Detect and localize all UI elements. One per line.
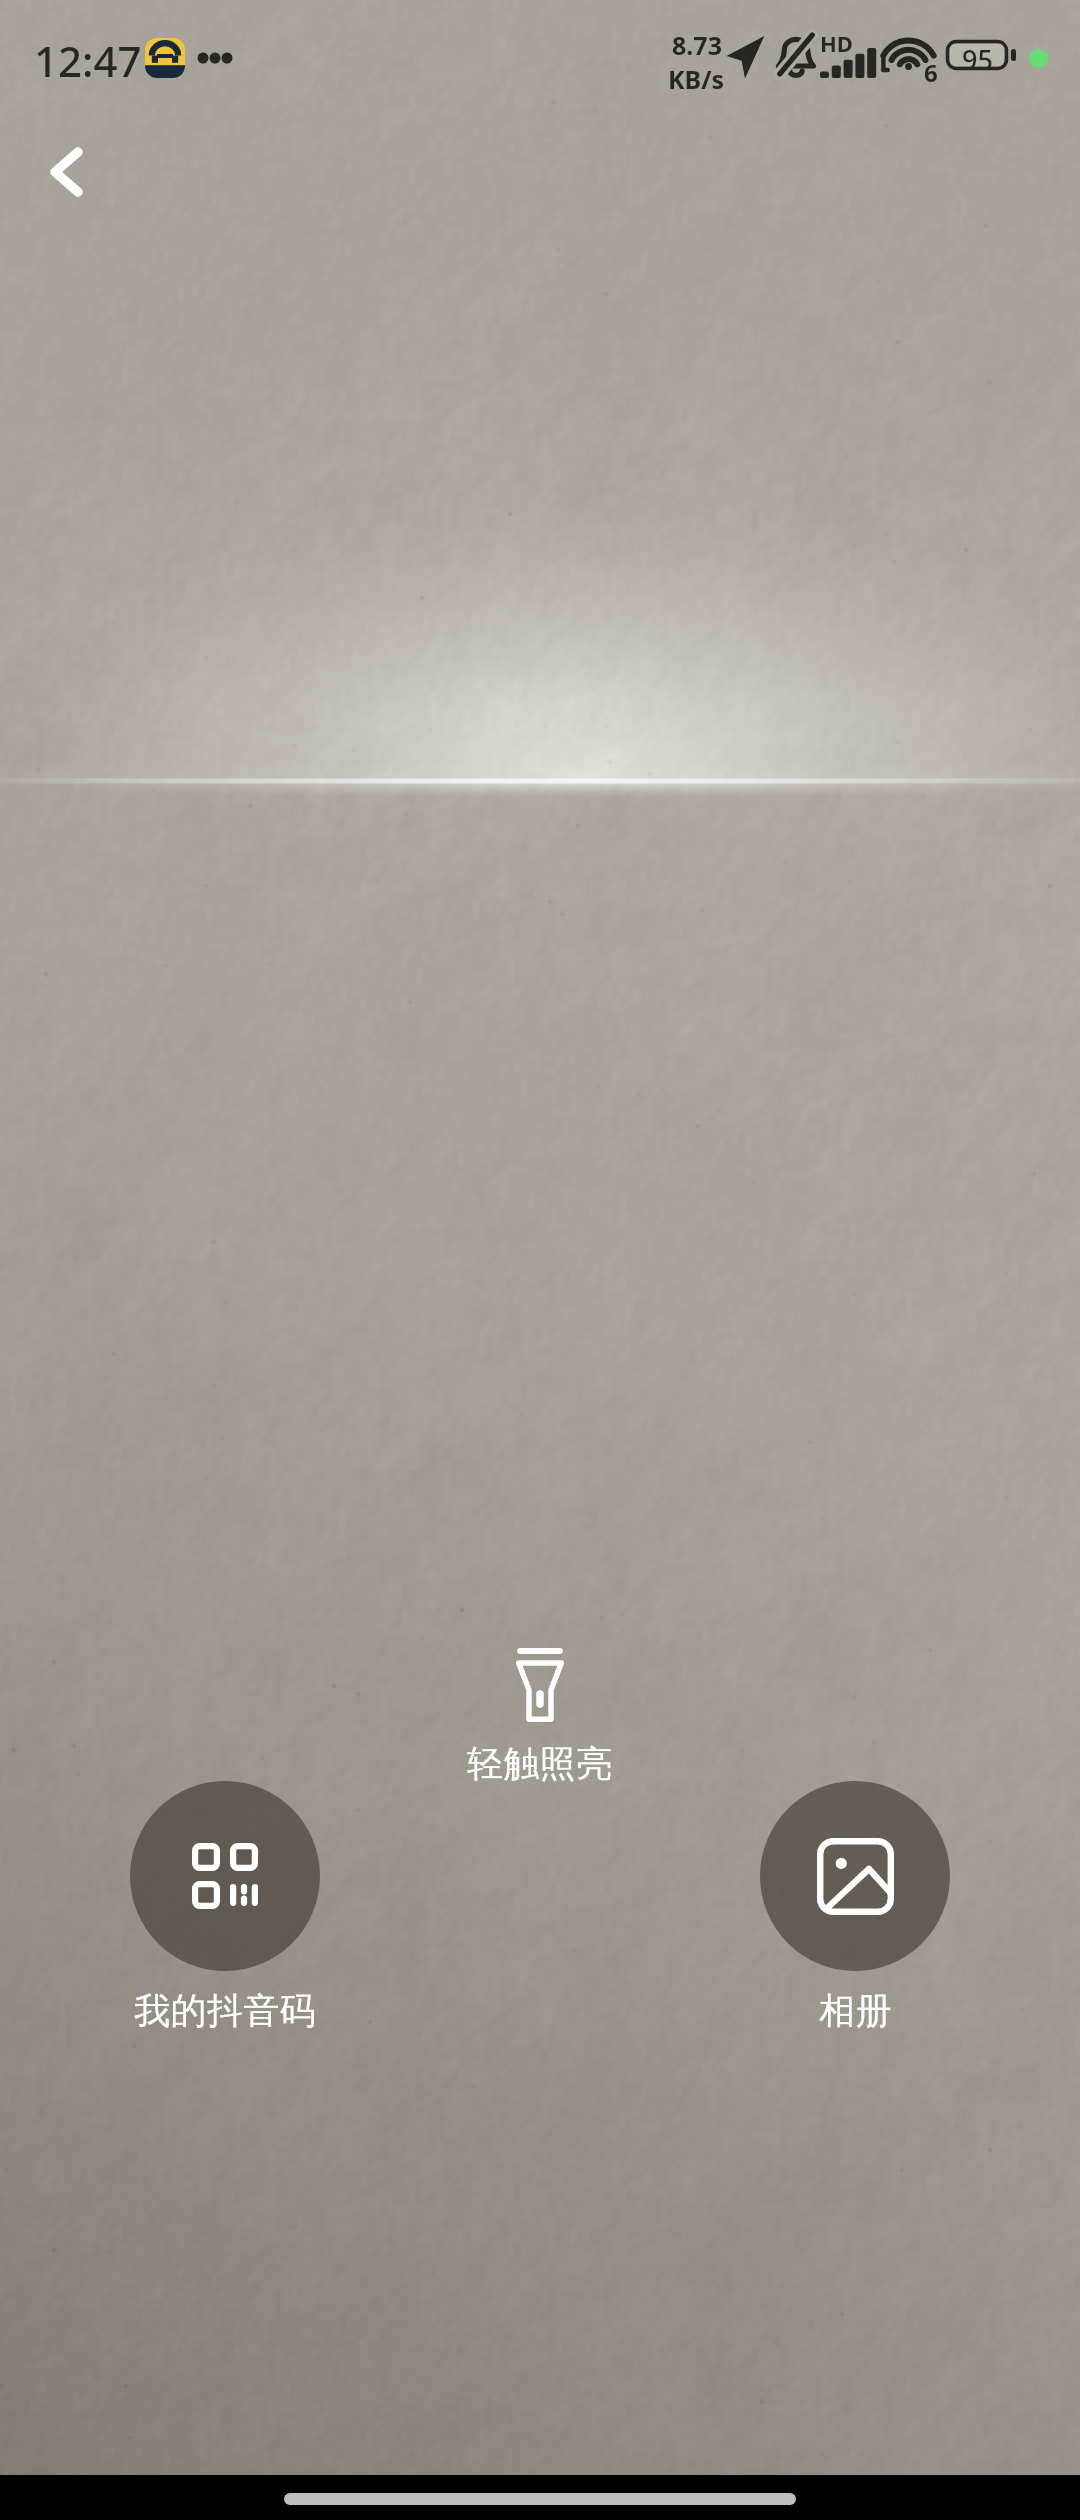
staticText: 12:47 [34, 32, 142, 89]
staticText: 我的抖音码 [134, 1988, 316, 2033]
button[interactable]: Back [17, 130, 111, 224]
staticText: 8.73 [672, 28, 722, 62]
button[interactable]: Toggle flashlight [467, 1648, 613, 1786]
staticText: 6 [924, 56, 938, 89]
staticText: 轻触照亮 [467, 1741, 613, 1786]
staticText: KB/s [668, 62, 725, 96]
staticText: HD [820, 28, 853, 58]
staticText: 相册 [819, 1988, 892, 2033]
staticText: 95 [962, 41, 993, 78]
button[interactable]: 相册 [760, 1781, 950, 2033]
button[interactable]: 我的抖音码 [130, 1781, 320, 2033]
